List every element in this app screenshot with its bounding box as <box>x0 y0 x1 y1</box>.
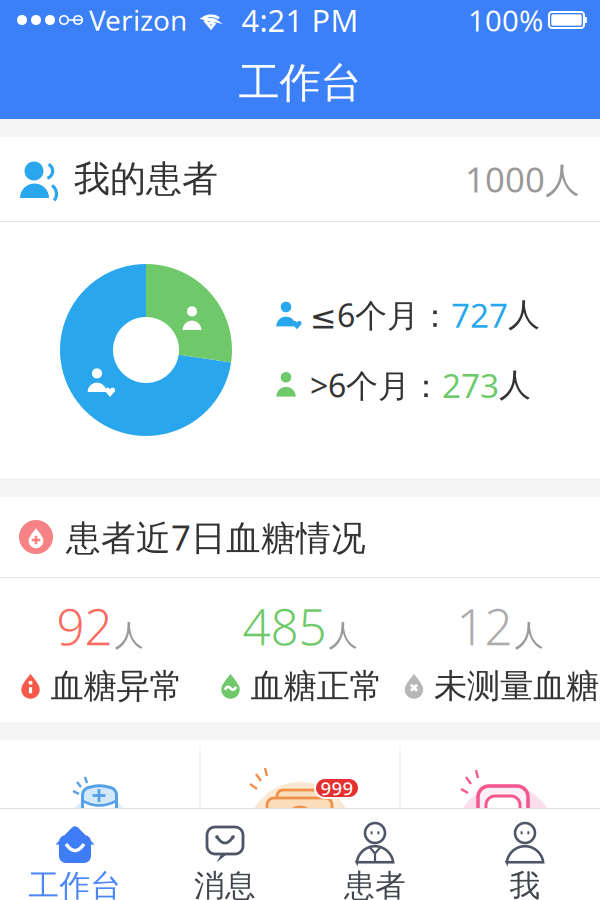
staticText: ≤6个月： <box>310 294 451 336</box>
staticText: 工作台 <box>28 867 121 900</box>
staticText: 999 <box>320 776 353 800</box>
staticText: 人 <box>328 617 357 653</box>
staticText: 患者 <box>344 867 406 900</box>
staticText: Verizon <box>89 1 187 39</box>
staticText: 人 <box>514 617 543 653</box>
staticText: 我的患者 <box>74 157 218 201</box>
staticText: 未测量血糖 <box>434 666 599 707</box>
staticText: 273 <box>442 363 499 407</box>
staticText: 血糖正常 <box>250 666 382 707</box>
button[interactable]: 12 <box>400 578 600 722</box>
staticText: 血糖异常 <box>50 666 182 707</box>
button[interactable]: 患者 <box>300 809 450 900</box>
staticText: 我 <box>509 867 540 900</box>
staticText: 人 <box>114 617 143 653</box>
staticText: 727 <box>451 293 508 337</box>
button[interactable] <box>200 740 400 808</box>
staticText: 1000人 <box>465 156 580 202</box>
staticText: 人 <box>499 365 531 405</box>
staticText: 100% <box>468 0 543 39</box>
staticText: 4:21 PM <box>241 0 358 40</box>
button[interactable]: 工作台 <box>0 809 150 900</box>
staticText: 人 <box>508 295 540 334</box>
button[interactable]: 我 <box>450 809 600 900</box>
staticText: 92 <box>56 593 112 659</box>
button[interactable]: 92 <box>0 578 200 722</box>
staticText: 工作台 <box>238 58 361 108</box>
staticText: >6个月： <box>310 364 442 406</box>
staticText: 12 <box>456 593 512 659</box>
button[interactable]: 我的患者 <box>0 137 600 221</box>
staticText: 485 <box>242 593 326 659</box>
staticText: 消息 <box>194 867 256 900</box>
button[interactable] <box>400 740 600 808</box>
button[interactable]: 消息 <box>150 809 300 900</box>
button[interactable] <box>0 740 200 808</box>
button[interactable]: 485 <box>200 578 400 722</box>
button[interactable]: 患者近7日血糖情况 <box>0 497 600 577</box>
staticText: 患者近7日血糖情况 <box>66 514 366 560</box>
